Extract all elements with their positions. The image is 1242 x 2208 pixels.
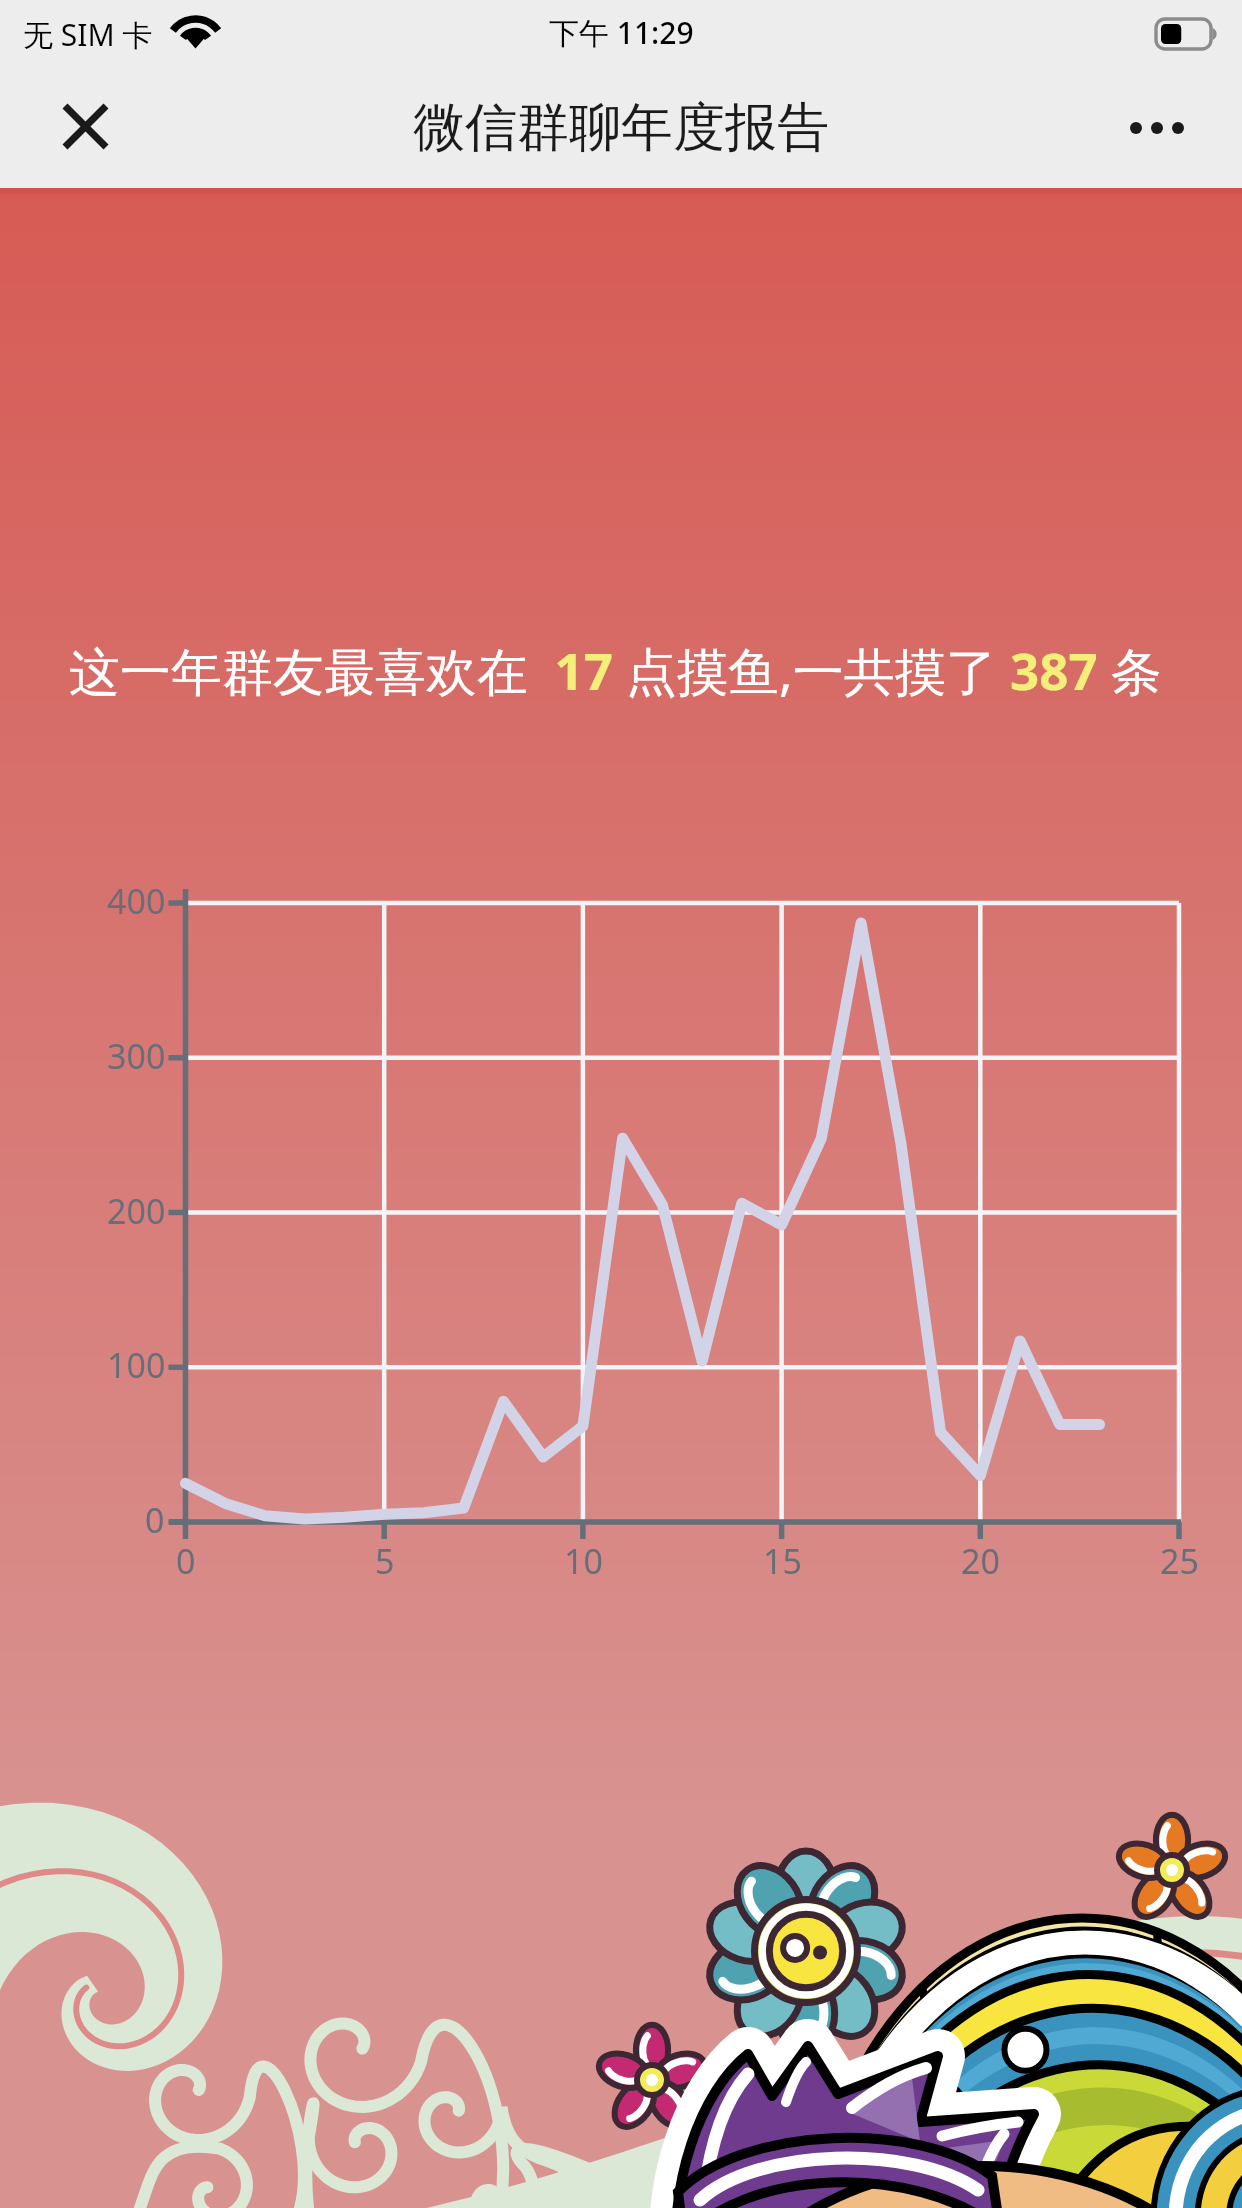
staticText: 400 [107,878,166,924]
button[interactable]: More options [1109,80,1205,176]
button[interactable]: Close [37,80,133,176]
staticText: 20 [961,1538,1000,1584]
staticText: 10 [564,1538,603,1584]
staticText: 5 [375,1538,395,1584]
staticText: 100 [107,1342,166,1388]
staticText: 微信群聊年度报告 [413,95,829,161]
staticText: 200 [107,1188,166,1234]
staticText: 这一年群友最喜欢在 17 点摸鱼,一共摸了 387 条 [69,635,1162,705]
staticText: 25 [1160,1538,1199,1584]
staticText: 0 [176,1538,196,1584]
staticText: 0 [145,1497,165,1543]
staticText: 无 SIM 卡 [23,14,153,55]
staticText: 300 [107,1033,166,1079]
staticText: 15 [763,1538,802,1584]
staticText: 下午 11:29 [549,12,694,53]
